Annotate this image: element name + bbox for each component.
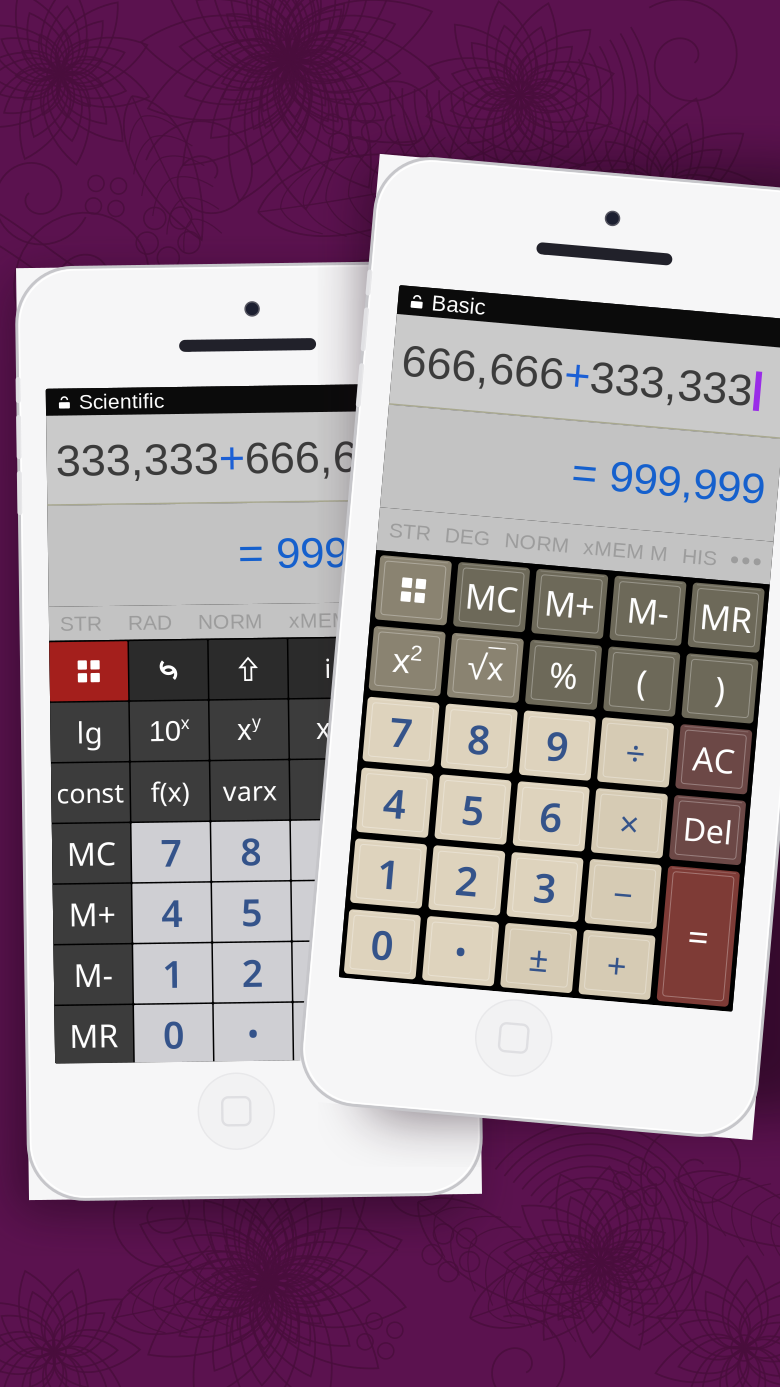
staticText: xMEM M <box>575 534 660 557</box>
button[interactable] <box>210 761 288 820</box>
staticText: 0 <box>397 932 420 986</box>
button[interactable]: Keypads <box>50 639 129 699</box>
staticText: MC <box>65 829 114 873</box>
button[interactable] <box>451 856 523 920</box>
button[interactable] <box>210 1003 288 1062</box>
staticText: HIS <box>401 609 436 633</box>
staticText: 1 <box>159 947 180 998</box>
staticText: 1 <box>397 861 420 915</box>
button[interactable] <box>451 785 523 849</box>
button[interactable] <box>687 643 759 707</box>
button[interactable] <box>687 785 759 849</box>
button[interactable] <box>210 821 288 880</box>
staticText: 6 <box>554 790 577 844</box>
button[interactable] <box>130 700 208 759</box>
button[interactable] <box>290 761 368 820</box>
button[interactable] <box>451 714 523 778</box>
button[interactable] <box>50 821 129 880</box>
staticText: 5 <box>476 790 499 844</box>
staticText: y <box>252 712 261 732</box>
button[interactable] <box>608 714 680 778</box>
button[interactable] <box>130 1003 208 1062</box>
staticText: • <box>481 936 494 983</box>
staticText: 9 <box>318 826 339 876</box>
button[interactable] <box>290 943 368 1002</box>
button[interactable] <box>530 571 602 636</box>
button[interactable] <box>369 821 447 880</box>
button[interactable] <box>130 882 208 941</box>
button[interactable] <box>530 643 602 707</box>
staticText: DEG <box>436 534 482 557</box>
staticText: % <box>551 651 580 698</box>
button[interactable] <box>369 639 447 699</box>
button[interactable] <box>687 856 759 991</box>
staticText: = 999,999 <box>240 529 434 578</box>
button[interactable] <box>369 700 447 759</box>
button[interactable] <box>210 943 288 1002</box>
staticText: + <box>222 433 248 483</box>
staticText: x <box>316 713 331 746</box>
button[interactable] <box>687 714 759 778</box>
button[interactable] <box>290 821 368 880</box>
staticText: − <box>399 950 418 995</box>
staticText: HIS <box>674 534 709 557</box>
button[interactable] <box>687 571 759 636</box>
staticText: 3 <box>554 861 577 915</box>
button[interactable] <box>210 882 288 941</box>
staticText: 2 <box>238 947 259 998</box>
button[interactable] <box>373 856 445 920</box>
button[interactable] <box>50 1003 129 1062</box>
button[interactable] <box>50 943 129 1002</box>
button[interactable] <box>451 571 523 636</box>
button[interactable] <box>290 882 368 941</box>
button[interactable]: Swap <box>130 639 208 699</box>
button[interactable] <box>530 856 602 920</box>
button[interactable] <box>373 785 445 849</box>
staticText: 0 <box>159 1007 180 1058</box>
button[interactable] <box>50 761 129 820</box>
button[interactable] <box>608 785 680 849</box>
button[interactable] <box>290 1003 368 1062</box>
button[interactable] <box>369 761 447 820</box>
staticText: x <box>394 655 411 694</box>
staticText: ± <box>556 936 576 983</box>
staticText: lg <box>77 710 103 750</box>
staticText: 7 <box>397 719 420 773</box>
button[interactable] <box>373 714 445 778</box>
staticText: Basic <box>402 303 456 328</box>
button[interactable] <box>290 639 368 699</box>
staticText: − <box>634 864 654 912</box>
button[interactable] <box>130 761 208 820</box>
button[interactable] <box>369 943 447 1002</box>
button[interactable] <box>210 700 288 759</box>
button[interactable] <box>50 882 129 941</box>
button[interactable] <box>530 927 602 991</box>
staticText: ; <box>325 772 332 808</box>
button[interactable] <box>290 700 368 759</box>
button[interactable] <box>130 821 208 880</box>
button[interactable] <box>50 700 129 759</box>
button[interactable] <box>373 643 445 707</box>
button[interactable] <box>608 927 680 991</box>
button[interactable] <box>608 571 680 636</box>
staticText: 9 <box>554 719 577 773</box>
button[interactable] <box>373 927 445 991</box>
button[interactable]: Keypads <box>373 571 445 636</box>
staticText: Del <box>698 795 747 839</box>
button[interactable]: Shift <box>210 639 288 699</box>
button[interactable] <box>530 714 602 778</box>
button[interactable] <box>130 943 208 1002</box>
button[interactable] <box>530 785 602 849</box>
staticText: 2 <box>411 654 423 678</box>
button[interactable] <box>451 927 523 991</box>
staticText: • <box>242 1010 255 1056</box>
staticText: AC <box>702 723 744 769</box>
staticText: 2 <box>331 712 341 732</box>
button[interactable] <box>608 856 680 920</box>
staticText: 4 <box>159 886 180 937</box>
button[interactable] <box>369 882 447 941</box>
button[interactable] <box>451 643 523 707</box>
button[interactable] <box>608 643 680 707</box>
